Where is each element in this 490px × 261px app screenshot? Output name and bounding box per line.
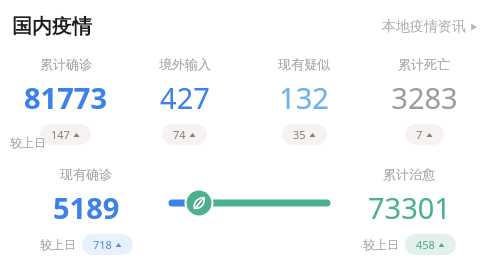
button[interactable]: 现有确诊: [6, 166, 166, 255]
button[interactable]: 74: [162, 124, 207, 145]
staticText: 73301: [368, 188, 451, 227]
staticText: 3283: [391, 78, 458, 117]
button[interactable]: 累计确诊: [6, 56, 125, 145]
staticText: 累计死亡: [398, 56, 450, 72]
staticText: 累计确诊: [40, 56, 92, 72]
staticText: 458: [416, 237, 435, 252]
staticText: 718: [93, 237, 112, 252]
staticText: 较上日: [10, 135, 46, 150]
button[interactable]: 458: [405, 234, 456, 255]
staticText: 较上日: [40, 237, 76, 252]
staticText: 7: [416, 127, 423, 142]
staticText: 427: [160, 78, 210, 117]
staticText: 累计治愈: [383, 166, 435, 182]
button[interactable]: 现有疑似: [244, 56, 364, 145]
staticText: 74: [173, 127, 186, 142]
staticText: 较上日: [363, 237, 399, 252]
button[interactable]: 国内疫情: [12, 14, 92, 39]
button[interactable]: Recovery progress slider: [170, 188, 330, 218]
button[interactable]: 境外输入: [125, 56, 244, 145]
staticText: 本地疫情资讯: [382, 18, 466, 36]
staticText: 81773: [24, 78, 107, 117]
button[interactable]: 累计死亡: [364, 56, 484, 145]
staticText: 5189: [53, 188, 120, 227]
button[interactable]: 147: [40, 124, 91, 145]
button[interactable]: 7: [405, 124, 444, 145]
staticText: 132: [279, 78, 329, 117]
staticText: 现有疑似: [278, 56, 330, 72]
staticText: 35: [293, 127, 306, 142]
button[interactable]: 累计治愈: [334, 166, 484, 255]
button[interactable]: 本地疫情资讯: [382, 18, 478, 36]
staticText: 现有确诊: [60, 166, 112, 182]
button[interactable]: 718: [82, 234, 133, 255]
button[interactable]: 35: [282, 124, 327, 145]
staticText: 147: [51, 127, 70, 142]
staticText: 境外输入: [159, 56, 211, 72]
